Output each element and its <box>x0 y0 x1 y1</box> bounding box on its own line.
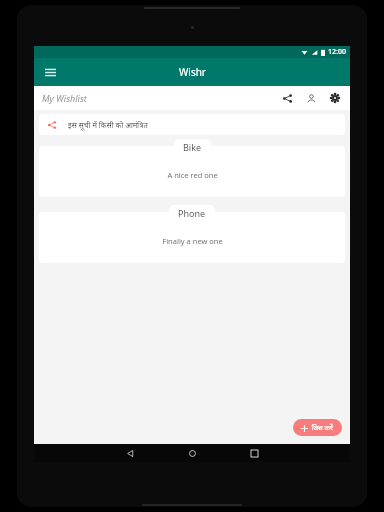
button[interactable]: Back <box>117 444 143 462</box>
staticText: A nice red one <box>167 170 218 180</box>
button[interactable]: Home <box>179 444 205 462</box>
button[interactable]: Recent apps <box>241 444 267 462</box>
button[interactable]: इस सूची में किसी को आमंत्रित <box>39 114 345 135</box>
staticText: इस सूची में किसी को आमंत्रित <box>68 120 148 130</box>
button[interactable]: Phone <box>169 205 215 221</box>
button[interactable]: विश करें <box>293 419 342 436</box>
staticText: विश करें <box>312 423 334 433</box>
staticText: Phone <box>178 207 206 219</box>
button[interactable]: Bike <box>174 139 211 155</box>
staticText: Finally a new one <box>162 236 223 246</box>
button[interactable]: People <box>302 89 320 107</box>
staticText: 12:00 <box>328 47 346 57</box>
staticText: Bike <box>183 141 202 153</box>
button[interactable]: Settings <box>326 89 344 107</box>
button[interactable]: Open navigation menu <box>40 62 60 82</box>
staticText: Wishr <box>179 65 206 79</box>
staticText: My Wishlist <box>42 92 87 104</box>
button[interactable]: Finally a new one <box>39 212 345 263</box>
button[interactable]: Share <box>278 89 296 107</box>
button[interactable]: A nice red one <box>39 146 345 197</box>
